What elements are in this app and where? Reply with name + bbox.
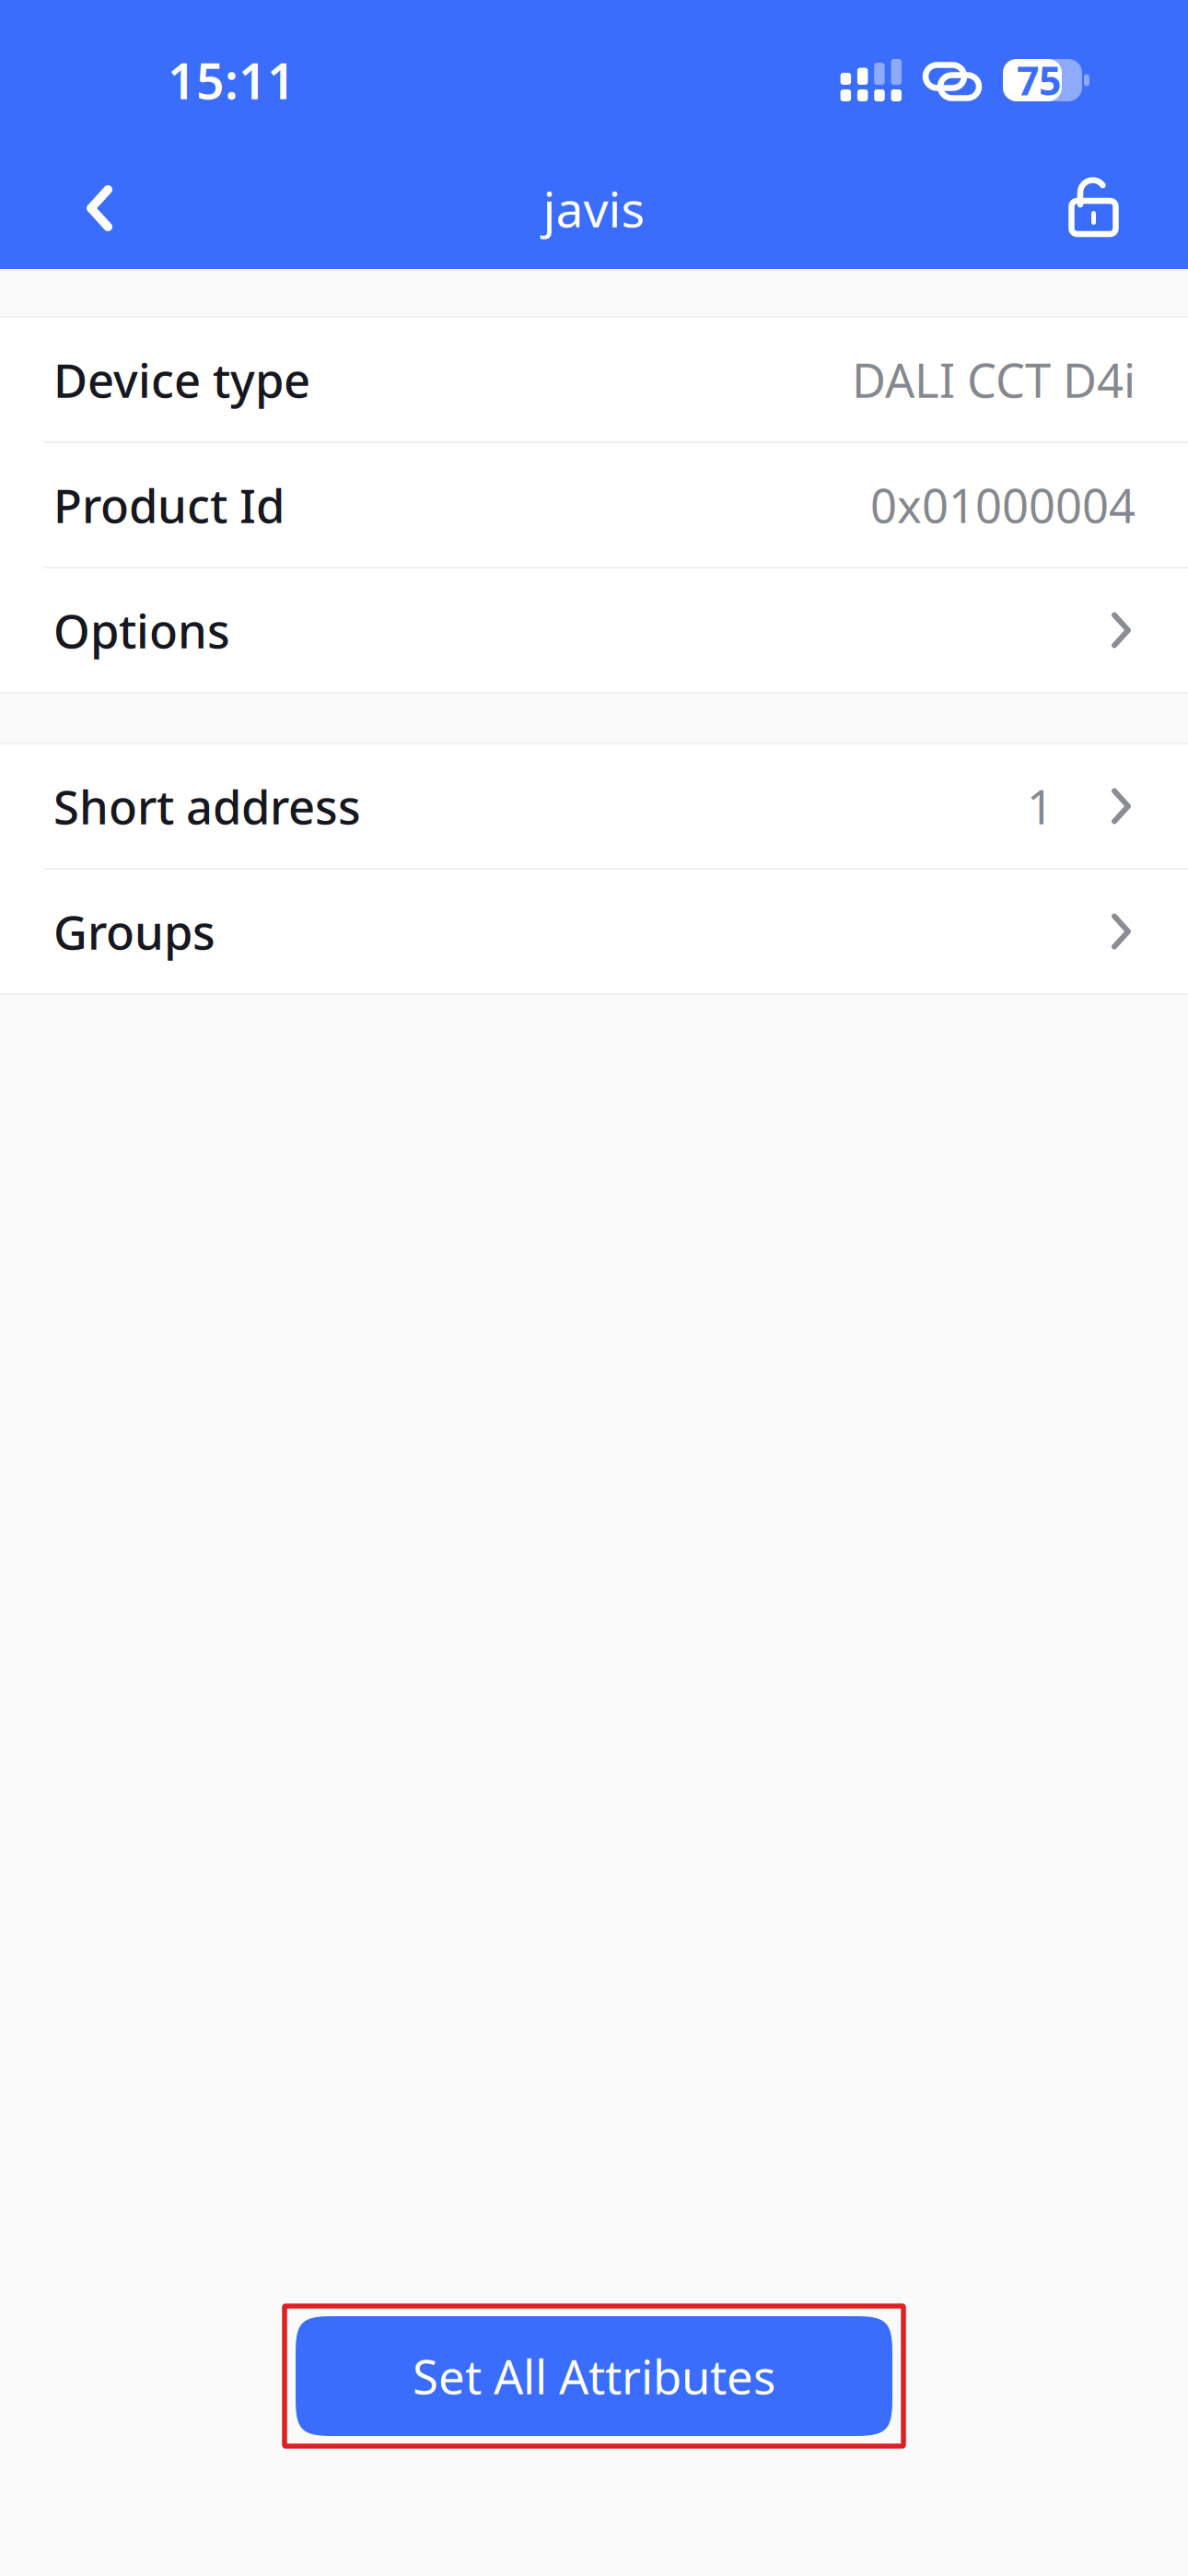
- staticText: 75: [1017, 54, 1061, 106]
- staticText: DALI CCT D4i: [852, 349, 1136, 411]
- button[interactable]: Options: [0, 568, 1188, 692]
- button[interactable]: Groups: [0, 870, 1188, 993]
- staticText: Short address: [53, 775, 361, 837]
- staticText: Set All Attributes: [413, 2345, 775, 2407]
- staticText: Device type: [53, 349, 310, 411]
- staticText: Product Id: [53, 474, 285, 536]
- button[interactable]: Short address: [0, 744, 1188, 868]
- staticText: Groups: [53, 900, 215, 962]
- button[interactable]: Unlock: [1005, 147, 1188, 269]
- staticText: 0x01000004: [870, 474, 1136, 536]
- staticText: Options: [53, 599, 230, 661]
- button[interactable]: Back: [0, 147, 199, 269]
- staticText: javis: [543, 176, 645, 241]
- button[interactable]: Set All Attributes: [285, 2306, 903, 2446]
- staticText: 15:11: [168, 48, 296, 113]
- staticText: 1: [1027, 775, 1054, 837]
